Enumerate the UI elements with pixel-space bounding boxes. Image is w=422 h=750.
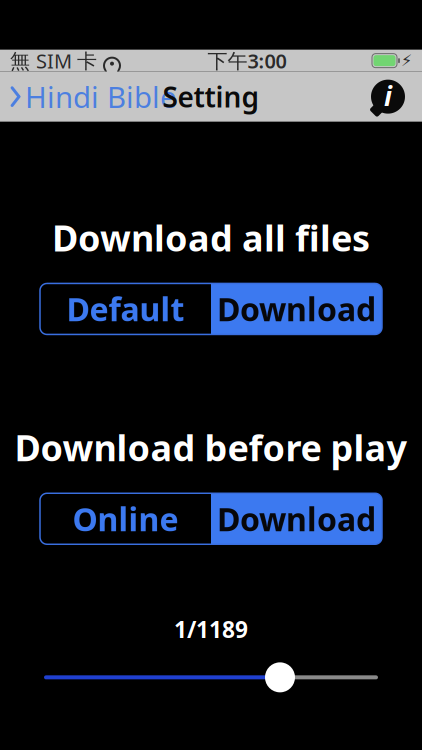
staticText: 無 SIM 卡 — [10, 47, 97, 74]
staticText: 下午3:00 — [207, 47, 286, 74]
staticText: Hindi Bible — [25, 77, 177, 116]
staticText: i — [384, 78, 392, 113]
button[interactable]: Online — [40, 493, 211, 544]
staticText: Download — [217, 497, 376, 540]
button[interactable]: Default — [40, 283, 211, 334]
staticText: 1/1189 — [174, 614, 248, 644]
button[interactable]: Hindi Bible — [0, 71, 177, 122]
staticText: ⚡︎ — [401, 52, 412, 70]
staticText — [97, 47, 102, 74]
staticText: Setting — [162, 78, 259, 115]
staticText: Download — [217, 288, 376, 330]
staticText: Download before play — [14, 423, 407, 471]
staticText: Online — [72, 497, 178, 540]
button[interactable]: Download — [211, 283, 382, 334]
staticText: Download all files — [52, 214, 370, 261]
button[interactable]: Download — [211, 493, 382, 544]
button[interactable]: Information — [368, 77, 422, 117]
staticText: Default — [66, 288, 184, 330]
